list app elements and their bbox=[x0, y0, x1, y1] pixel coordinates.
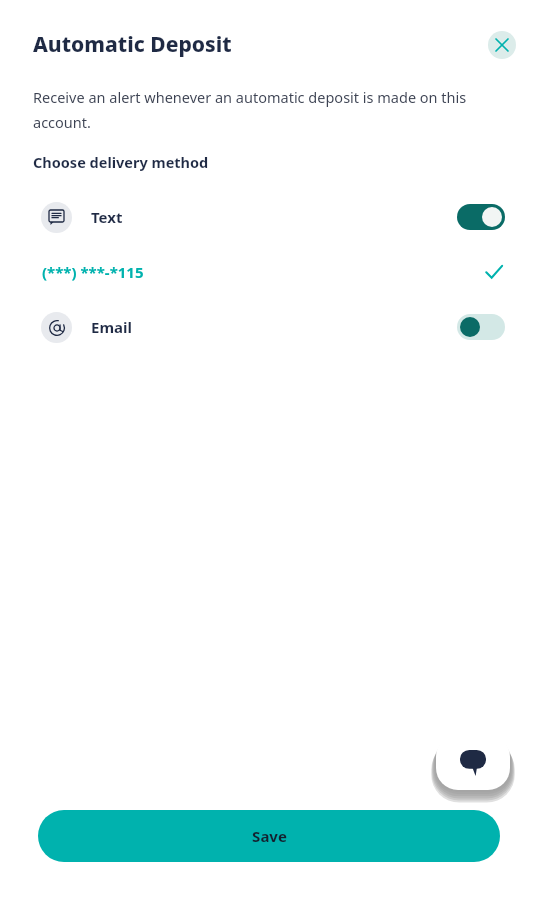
button[interactable]: On bbox=[457, 204, 505, 230]
staticText: Automatic Deposit bbox=[33, 30, 232, 59]
other: Selected bbox=[483, 261, 505, 283]
button[interactable]: (***) ***-*115 bbox=[0, 246, 538, 298]
button[interactable]: Chat bbox=[436, 735, 510, 790]
staticText: (***) ***-*115 bbox=[42, 262, 144, 282]
staticText: Save bbox=[252, 826, 287, 846]
button[interactable]: Email bbox=[0, 298, 538, 356]
button[interactable]: Off bbox=[457, 314, 505, 340]
staticText: Receive an alert whenever an automatic d… bbox=[33, 87, 498, 132]
button[interactable]: Save bbox=[38, 810, 500, 862]
button[interactable]: Close bbox=[488, 31, 516, 59]
staticText: Choose delivery method bbox=[33, 152, 209, 172]
button[interactable]: Text bbox=[0, 188, 538, 246]
staticText: Email bbox=[91, 317, 132, 337]
staticText: Text bbox=[91, 207, 123, 227]
